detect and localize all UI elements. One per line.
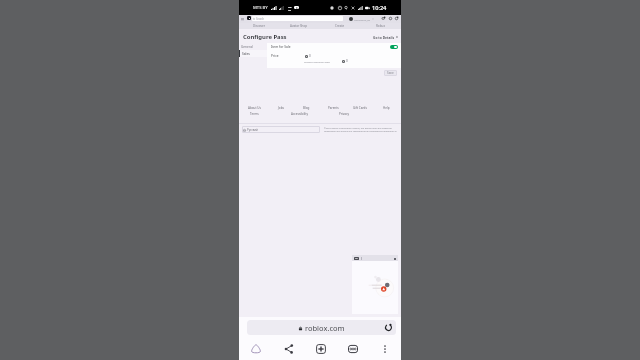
button[interactable]: Jobs	[270, 105, 292, 110]
button[interactable]: Messages	[381, 16, 386, 21]
button[interactable]: Tabs	[337, 338, 369, 360]
button[interactable]: Help	[375, 105, 397, 110]
staticText: About Us	[248, 106, 261, 110]
button[interactable]: General	[239, 43, 267, 50]
button[interactable]: Reload page	[384, 323, 393, 332]
button[interactable]: Parents	[322, 105, 344, 110]
button[interactable]: roblox.com	[247, 320, 396, 335]
button[interactable]: Save	[384, 70, 397, 76]
button[interactable]: Close ad	[393, 257, 396, 260]
staticText: Parents	[328, 106, 339, 110]
staticText: Save	[387, 71, 394, 75]
button[interactable]: Go to Details	[349, 35, 398, 39]
staticText: ©2024 Roblox Corporation. Roblox, the Ro…	[324, 127, 398, 133]
staticText: Ad	[355, 257, 358, 260]
button[interactable]: More options	[369, 338, 401, 360]
staticText: Sales	[242, 52, 250, 56]
button[interactable]: Item for Sale toggle	[390, 45, 398, 49]
button[interactable]: Sales	[239, 50, 267, 57]
staticText: Privacy	[339, 112, 350, 116]
staticText: Help	[383, 106, 390, 110]
button[interactable]: Gift Cards	[349, 105, 371, 110]
button[interactable]: About Us	[243, 105, 265, 110]
staticText: MTS BY	[253, 5, 268, 11]
staticText: Create	[335, 24, 345, 28]
staticText: Robux	[376, 24, 385, 28]
button[interactable]: Blog	[295, 105, 317, 110]
button[interactable]: Privacy	[333, 111, 355, 116]
staticText: 0	[309, 54, 311, 58]
staticText: Item for Sale	[271, 45, 291, 49]
staticText: Terms	[250, 112, 259, 116]
staticText: Discover	[253, 24, 266, 28]
button[interactable]: Robux	[360, 23, 401, 29]
staticText: 10:24	[372, 4, 387, 12]
staticText: HD	[288, 5, 292, 8]
button[interactable]: Русский	[242, 126, 320, 133]
staticText: Configure Pass	[243, 33, 287, 41]
button[interactable]: Notifications	[394, 16, 399, 21]
staticText: Accessibility	[291, 112, 308, 116]
button[interactable]: Configure Pass	[243, 33, 287, 41]
staticText: 4G	[288, 8, 292, 11]
button[interactable]: Avatar Shop	[279, 23, 319, 29]
staticText: General	[241, 45, 253, 49]
staticText: Русский	[247, 128, 258, 132]
button[interactable]: Accessibility	[288, 111, 310, 116]
staticText: Jobs	[278, 106, 284, 110]
button[interactable]: robuxsxvn_xd	[349, 17, 374, 21]
button[interactable]: New tab	[305, 338, 337, 360]
staticText: Search	[256, 17, 265, 21]
staticText: Avatar Shop	[290, 24, 308, 28]
button[interactable]: Terms	[243, 111, 265, 116]
button[interactable]: Roblox home	[247, 16, 251, 20]
staticText: Price	[271, 54, 279, 58]
staticText: Blog	[303, 106, 310, 110]
staticText: Gift Cards	[353, 106, 367, 110]
button[interactable]: Discover	[239, 23, 279, 29]
button[interactable]: Create	[319, 23, 360, 29]
staticText: Go to Details	[373, 35, 395, 39]
button[interactable]: Friend requests	[388, 16, 393, 21]
button[interactable]: Menu	[240, 15, 245, 22]
button[interactable]: Home	[239, 338, 272, 360]
button[interactable]: Search	[252, 16, 343, 21]
button[interactable]: Share	[272, 338, 305, 360]
staticText: 0	[346, 59, 348, 63]
staticText: robuxsxvn_xd	[354, 18, 371, 21]
staticText: Creator earnings after	[304, 60, 331, 63]
staticText: roblox.com	[305, 323, 345, 333]
